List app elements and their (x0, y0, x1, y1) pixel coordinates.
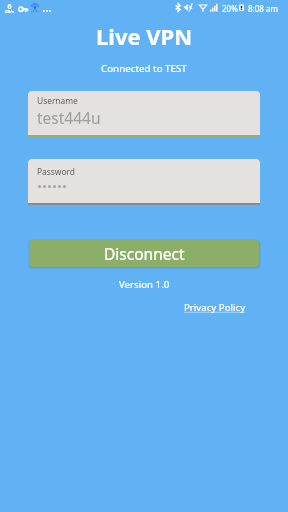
other: VPN connected (30, 3, 40, 13)
other: Wi-Fi (199, 3, 207, 12)
other: Battery (239, 4, 244, 11)
staticText: Password (37, 166, 75, 177)
button[interactable]: Password (28, 159, 260, 203)
staticText: Connected to TEST (101, 62, 187, 75)
button[interactable]: Disconnect (29, 240, 259, 267)
staticText: 6 (4, 2, 15, 12)
button[interactable]: Username (28, 91, 260, 135)
staticText: Version 1.0 (119, 278, 170, 291)
button[interactable]: Privacy Policy (184, 301, 246, 314)
other: Sound muted (183, 3, 194, 12)
staticText: Username (37, 95, 78, 106)
staticText: 8:08 am (248, 3, 278, 14)
other: VPN key (18, 6, 28, 13)
other: Mobile signal (210, 3, 218, 12)
other: Bluetooth (175, 3, 181, 12)
staticText: 20% (222, 3, 238, 14)
staticText: test444u (37, 107, 101, 128)
staticText: KB/s (4, 9, 15, 15)
staticText: Live VPN (96, 21, 193, 51)
staticText: Disconnect (104, 243, 185, 264)
staticText: Privacy Policy (184, 301, 246, 314)
